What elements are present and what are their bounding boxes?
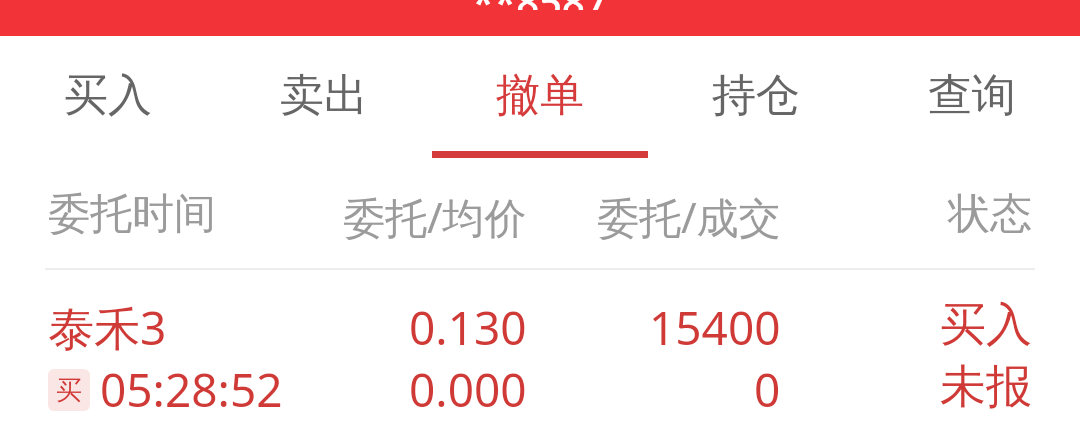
staticText: 买	[56, 374, 82, 407]
staticText: 05:28:52	[100, 358, 283, 421]
staticText: 买入	[64, 68, 152, 123]
staticText: 查询	[928, 68, 1016, 123]
staticText: 状态	[948, 188, 1032, 241]
button[interactable]: 买入	[0, 36, 216, 160]
staticText: 委托时间	[48, 188, 216, 241]
button[interactable]: 查询	[864, 36, 1080, 160]
staticText: 泰禾3	[48, 296, 167, 359]
staticText: 委托/成交	[597, 188, 781, 245]
staticText: 委托/均价	[343, 188, 527, 245]
staticText: 15400	[649, 296, 781, 359]
button[interactable]: 卖出	[216, 36, 432, 160]
button[interactable]: 泰禾3	[0, 270, 1080, 424]
staticText: 持仓	[712, 68, 800, 123]
staticText: 买入	[940, 296, 1032, 354]
button[interactable]: 持仓	[648, 36, 864, 160]
staticText: **8587	[472, 0, 608, 10]
button[interactable]: 撤单	[432, 36, 648, 160]
staticText: 卖出	[280, 68, 368, 123]
staticText: 撤单	[496, 68, 584, 123]
staticText: 0	[754, 358, 781, 421]
staticText: 0.000	[409, 358, 527, 421]
staticText: 未报	[940, 358, 1032, 416]
staticText: 0.130	[409, 296, 527, 359]
